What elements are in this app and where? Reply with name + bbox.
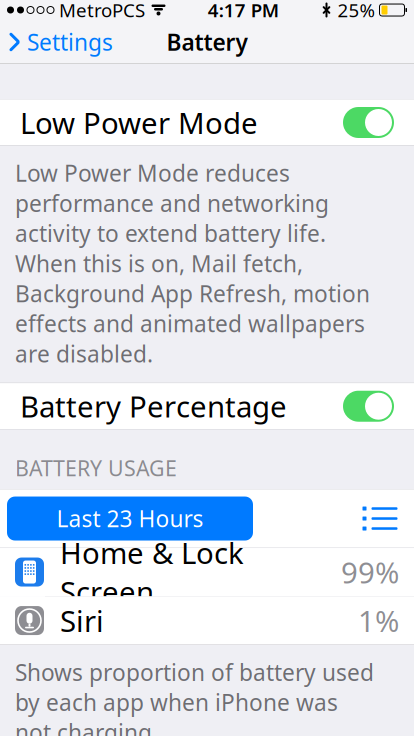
button[interactable]: Low Power Mode: [343, 107, 394, 138]
staticText: 25%: [337, 0, 375, 22]
staticText: 99%: [341, 553, 399, 592]
staticText: BATTERY USAGE: [15, 454, 177, 482]
staticText: Low Power Mode: [20, 103, 258, 142]
staticText: 4:17 PM: [208, 0, 279, 22]
staticText: Low Power Mode reduces performance and n…: [15, 158, 370, 369]
staticText: MetroPCS: [59, 0, 145, 22]
staticText: Battery: [166, 27, 247, 57]
staticText: 1%: [358, 601, 399, 640]
button[interactable]: Siri: [0, 596, 414, 644]
staticText: Settings: [27, 27, 113, 57]
staticText: Battery Percentage: [20, 387, 287, 426]
staticText: Siri: [60, 601, 104, 640]
button[interactable]: Last 23 Hours: [7, 496, 253, 540]
button[interactable]: Home & Lock Screen: [0, 548, 414, 596]
button[interactable]: Show usage list: [352, 496, 408, 540]
button[interactable]: Settings: [0, 21, 113, 63]
staticText: Home & Lock Screen: [60, 533, 244, 611]
button[interactable]: Battery Percentage: [343, 391, 394, 422]
staticText: Shows proportion of battery used by each…: [15, 657, 374, 736]
staticText: Last 23 Hours: [56, 503, 203, 534]
